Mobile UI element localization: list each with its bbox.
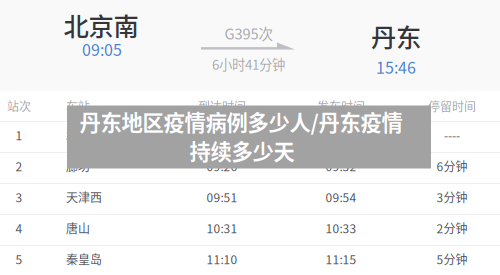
staticText: 发车时间 [317,97,365,115]
staticText: 11:10 [206,250,237,268]
staticText: 3 [15,188,22,206]
staticText: 到达时间 [198,97,246,115]
staticText: 5 [15,250,22,268]
button[interactable]: 丹东 [336,22,456,74]
staticText: G395次 [224,22,273,44]
staticText: 唐山 [66,219,90,237]
staticText: 5分钟 [436,250,467,268]
staticText: 车站 [66,97,90,115]
staticText: 天津西 [66,188,102,206]
staticText: 北京南 [66,126,102,144]
staticText: 09:32 [325,157,356,175]
button[interactable]: 1 [0,122,500,152]
staticText: 丹东地区疫情病例多少人/丹东疫情 [79,106,402,137]
button[interactable]: 4 [0,215,500,245]
staticText: 09:54 [325,188,356,206]
staticText: 持续多少天 [189,135,294,166]
button[interactable]: 2 [0,153,500,183]
staticText: 09:51 [206,188,237,206]
staticText: 09:05 [325,126,356,144]
staticText: 09:26 [206,157,237,175]
staticText: 09:05 [82,37,122,61]
staticText: 北京南 [63,7,138,43]
staticText: 10:33 [325,219,356,237]
staticText: 停留时间 [428,97,476,115]
staticText: 丹东 [371,18,421,54]
staticText: 1 [15,126,22,144]
staticText: 2 [15,157,22,175]
button[interactable]: 3 [0,184,500,214]
staticText: 11:15 [325,250,356,268]
staticText: 4 [15,219,22,237]
staticText: 6小时41分钟 [212,54,285,74]
staticText: 10:31 [206,219,237,237]
button[interactable]: 5 [0,246,500,275]
staticText: 2分钟 [436,219,467,237]
staticText: 秦皇岛 [66,250,102,268]
staticText: ---- [214,126,230,144]
staticText: 站次 [7,97,31,115]
button[interactable]: 北京南 [41,11,161,67]
staticText: 6分钟 [436,157,467,175]
staticText: 廊坊 [66,157,90,175]
staticText: 15:46 [376,55,416,78]
staticText: 3分钟 [436,188,467,206]
staticText: ---- [444,126,460,144]
